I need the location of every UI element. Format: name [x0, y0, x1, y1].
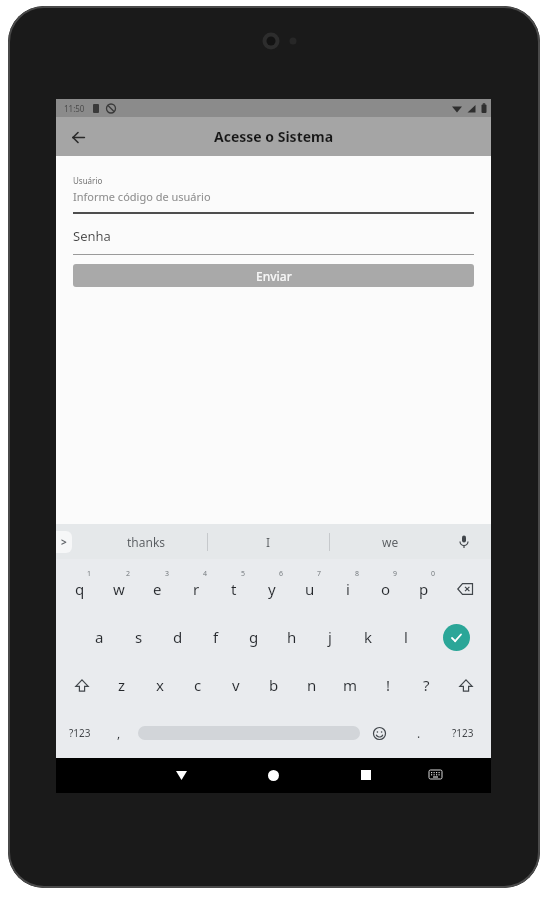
button[interactable]	[360, 709, 399, 757]
button[interactable]: c	[179, 661, 217, 709]
staticText: r	[193, 579, 200, 599]
staticText: thanks	[127, 534, 166, 550]
button[interactable]: g	[235, 613, 273, 661]
button[interactable]: x	[141, 661, 179, 709]
button[interactable]	[425, 613, 487, 661]
staticText: v	[232, 675, 240, 695]
staticText: g	[249, 627, 259, 647]
button[interactable]: !	[369, 661, 407, 709]
button[interactable]	[138, 709, 360, 757]
staticText: d	[173, 627, 183, 647]
button[interactable]: Usuário	[73, 175, 474, 214]
button[interactable]: h	[273, 613, 311, 661]
staticText: Informe código de usuário	[73, 189, 211, 204]
staticText: ?123	[69, 726, 91, 740]
button[interactable]	[354, 763, 378, 787]
button[interactable]	[423, 763, 447, 787]
button[interactable]: s	[119, 613, 158, 661]
staticText: 9	[393, 569, 398, 579]
button[interactable]: r	[177, 565, 215, 613]
staticText: h	[287, 627, 297, 647]
button[interactable]: we	[330, 524, 451, 559]
button[interactable]: u	[291, 565, 329, 613]
staticText: 3	[165, 569, 170, 579]
staticText: 11:50	[64, 103, 85, 114]
button[interactable]	[261, 763, 285, 787]
staticText: .	[417, 725, 421, 741]
staticText: Senha	[73, 227, 111, 245]
button[interactable]: I	[208, 524, 329, 559]
button[interactable]: b	[255, 661, 293, 709]
staticText: z	[118, 675, 126, 695]
staticText: p	[419, 579, 429, 599]
button[interactable]	[443, 565, 487, 613]
button[interactable]: thanks	[86, 524, 207, 559]
staticText: t	[231, 579, 237, 599]
button[interactable]	[169, 763, 193, 787]
button[interactable]: w	[99, 565, 138, 613]
button[interactable]: >	[56, 531, 72, 553]
staticText: j	[328, 627, 332, 647]
button[interactable]: q	[60, 565, 99, 613]
staticText: 6	[279, 569, 284, 579]
button[interactable]: t	[215, 565, 253, 613]
button[interactable]: Enviar	[73, 264, 474, 287]
staticText: l	[404, 627, 408, 647]
staticText: m	[343, 675, 358, 695]
staticText: a	[95, 627, 104, 647]
staticText: u	[305, 579, 315, 599]
staticText: >	[61, 535, 67, 549]
button[interactable]: ,	[99, 709, 138, 757]
staticText: 2	[126, 569, 131, 579]
staticText: 0	[431, 569, 436, 579]
staticText: 7	[317, 569, 322, 579]
staticText: Acesse o Sistema	[214, 127, 334, 146]
button[interactable]: .	[399, 709, 438, 757]
button[interactable]	[60, 661, 103, 709]
staticText: 4	[203, 569, 208, 579]
button[interactable]: ?123	[438, 709, 487, 757]
staticText: k	[364, 627, 373, 647]
button[interactable]: j	[311, 613, 349, 661]
staticText: 8	[355, 569, 360, 579]
button[interactable]: e	[138, 565, 177, 613]
button[interactable]: l	[387, 613, 425, 661]
button[interactable]: v	[217, 661, 255, 709]
staticText: x	[156, 675, 164, 695]
staticText: 1	[87, 569, 92, 579]
button[interactable]	[457, 535, 471, 549]
staticText: w	[113, 579, 125, 599]
staticText: i	[346, 579, 350, 599]
button[interactable]: k	[349, 613, 387, 661]
staticText: f	[213, 627, 219, 647]
button[interactable]: y	[253, 565, 291, 613]
staticText: !	[386, 675, 391, 695]
button[interactable]: Senha	[73, 227, 474, 255]
button[interactable]	[64, 123, 92, 151]
button[interactable]: d	[158, 613, 197, 661]
staticText: ?123	[452, 726, 474, 740]
button[interactable]: f	[197, 613, 235, 661]
staticText: 5	[241, 569, 246, 579]
button[interactable]: m	[331, 661, 369, 709]
staticText: e	[153, 579, 162, 599]
button[interactable]: ?	[407, 661, 445, 709]
staticText: o	[381, 579, 391, 599]
staticText: b	[269, 675, 279, 695]
staticText: Enviar	[256, 268, 292, 284]
staticText: n	[307, 675, 317, 695]
staticText: ,	[117, 725, 121, 741]
button[interactable]	[445, 661, 487, 709]
staticText: we	[382, 534, 399, 550]
button[interactable]: ?123	[60, 709, 99, 757]
staticText: Usuário	[73, 175, 103, 186]
staticText: s	[135, 627, 143, 647]
staticText: I	[266, 534, 271, 550]
button[interactable]: p	[405, 565, 443, 613]
button[interactable]: a	[80, 613, 119, 661]
button[interactable]: n	[293, 661, 331, 709]
button[interactable]: i	[329, 565, 367, 613]
button[interactable]: z	[103, 661, 141, 709]
staticText: ?	[423, 675, 430, 695]
button[interactable]: o	[367, 565, 405, 613]
